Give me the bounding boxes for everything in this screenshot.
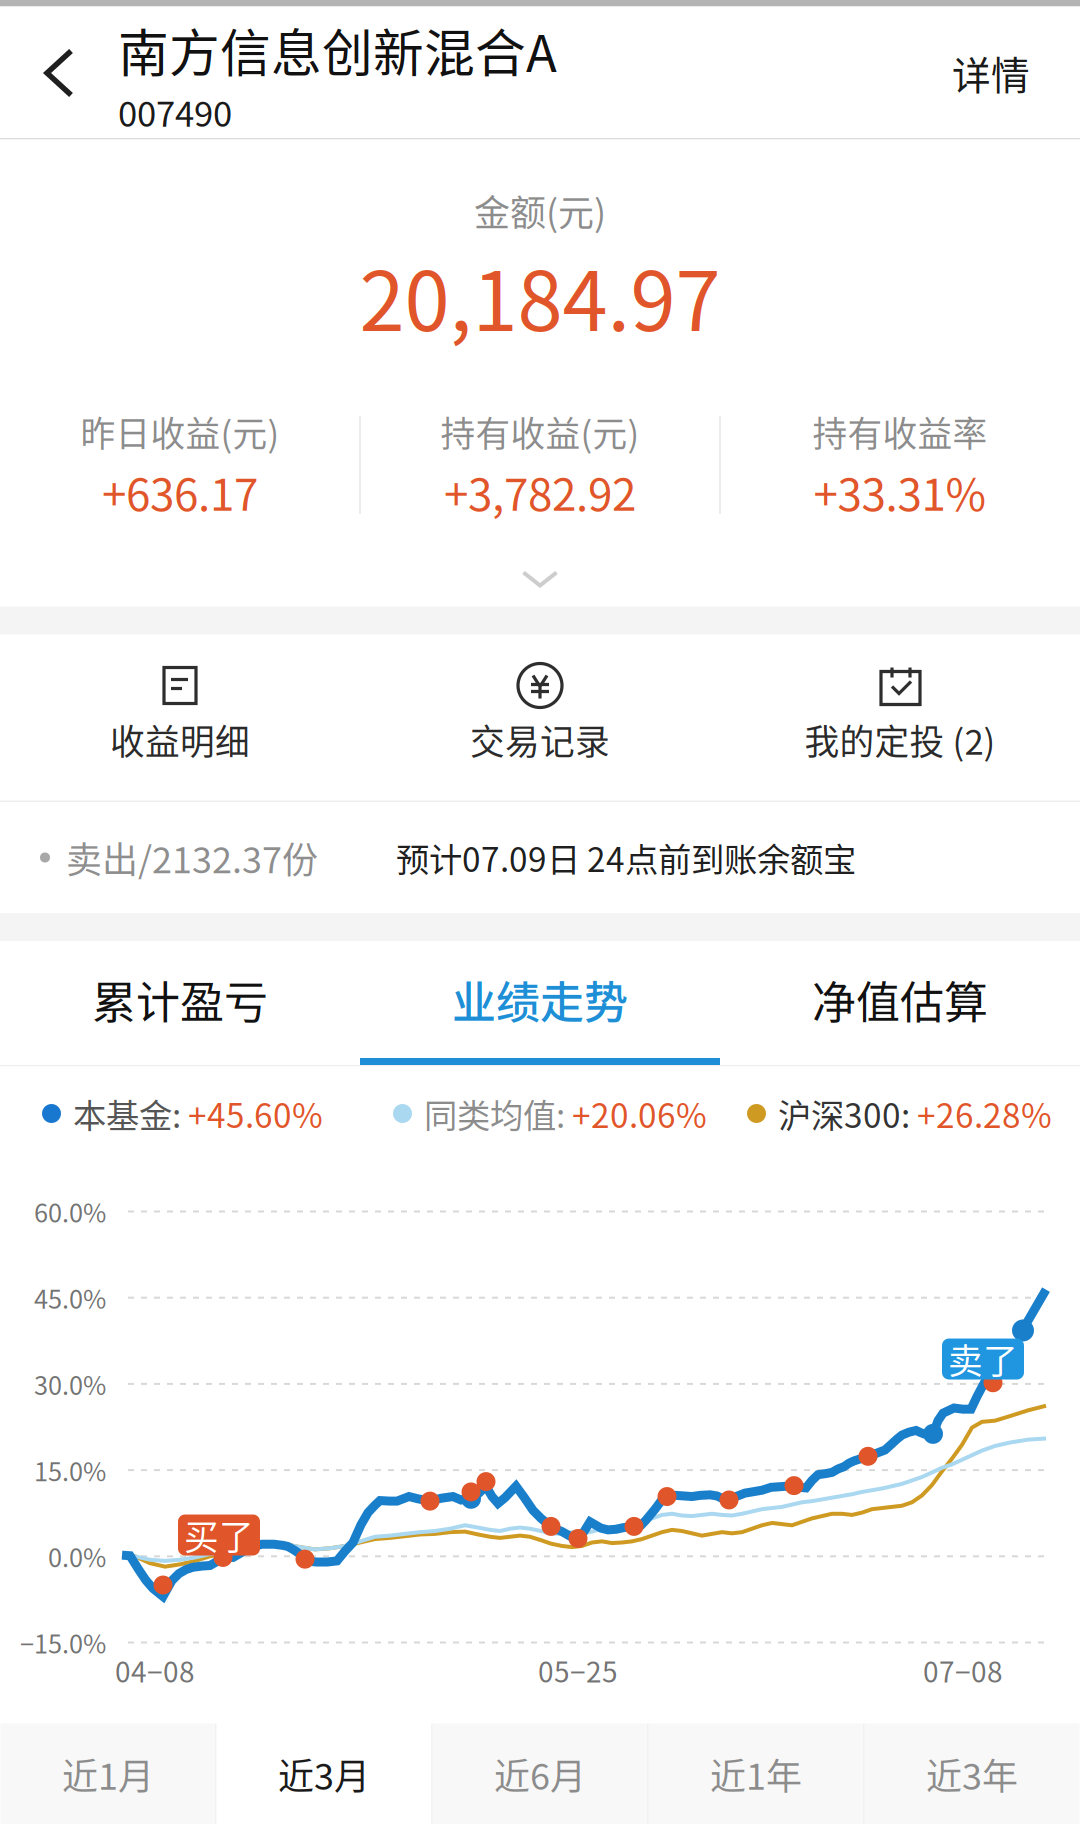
staticText: 卖出/2132.37份	[66, 831, 318, 883]
button[interactable]: 累计盈亏	[0, 941, 360, 1065]
staticText: 007490	[118, 87, 232, 137]
staticText: 20,184.97	[359, 237, 720, 354]
button[interactable]: 返回	[0, 6, 118, 139]
staticText: 45.0%	[34, 1279, 106, 1316]
staticText: 近3年	[926, 1748, 1018, 1800]
button[interactable]: 近3月	[216, 1723, 431, 1824]
staticText: 30.0%	[34, 1366, 106, 1402]
button[interactable]: 交易记录	[360, 634, 720, 800]
button[interactable]: 我的定投 (2)	[720, 634, 1080, 800]
staticText: 业绩走势	[452, 968, 628, 1031]
staticText: 近1月	[62, 1748, 154, 1800]
staticText: +20.06%	[572, 1089, 707, 1138]
staticText: +33.31%	[813, 460, 986, 523]
staticText: 近6月	[494, 1748, 586, 1800]
staticText: 买了	[184, 1510, 254, 1560]
button[interactable]: 展开	[451, 540, 628, 606]
staticText: 60.0%	[34, 1193, 106, 1230]
staticText: 0.0%	[48, 1538, 106, 1575]
button[interactable]: 净值估算	[720, 941, 1080, 1065]
staticText: 金额(元)	[474, 184, 606, 237]
staticText: 我的定投 (2)	[804, 714, 995, 765]
staticText: 近1年	[710, 1748, 802, 1800]
staticText: 同类均值:	[424, 1089, 572, 1138]
staticText: 南方信息创新混合A	[118, 13, 557, 87]
staticText: 07−08	[923, 1650, 1003, 1690]
staticText: 15.0%	[34, 1452, 106, 1488]
staticText: 沪深300:	[778, 1089, 917, 1138]
staticText: 持有收益率	[812, 406, 987, 457]
staticText: +3,782.92	[444, 460, 636, 523]
staticText: +45.60%	[188, 1089, 323, 1138]
staticText: 近3月	[278, 1748, 370, 1800]
button[interactable]: 详情	[922, 6, 1080, 139]
staticText: 昨日收益(元)	[80, 406, 279, 457]
staticText: +636.17	[102, 460, 258, 523]
staticText: +26.28%	[917, 1089, 1052, 1138]
button[interactable]: 近1月	[0, 1723, 215, 1824]
staticText: 04−08	[115, 1650, 195, 1690]
button[interactable]: 近3年	[864, 1723, 1079, 1824]
staticText: 收益明细	[110, 714, 250, 765]
button[interactable]: 近1年	[648, 1723, 863, 1824]
staticText: −15.0%	[20, 1624, 106, 1661]
staticText: 本基金:	[73, 1089, 188, 1138]
staticText: 净值估算	[812, 968, 988, 1031]
staticText: 交易记录	[470, 714, 610, 765]
staticText: 05−25	[538, 1650, 618, 1690]
staticText: 卖了	[948, 1334, 1018, 1384]
staticText: 详情	[952, 45, 1030, 101]
button[interactable]: 收益明细	[0, 634, 360, 800]
button[interactable]: 近6月	[432, 1723, 647, 1824]
staticText: 持有收益(元)	[440, 406, 639, 457]
staticText: 预计07.09日 24点前到账余额宝	[396, 833, 856, 882]
button[interactable]: 业绩走势	[360, 941, 720, 1065]
staticText: 累计盈亏	[92, 968, 268, 1031]
